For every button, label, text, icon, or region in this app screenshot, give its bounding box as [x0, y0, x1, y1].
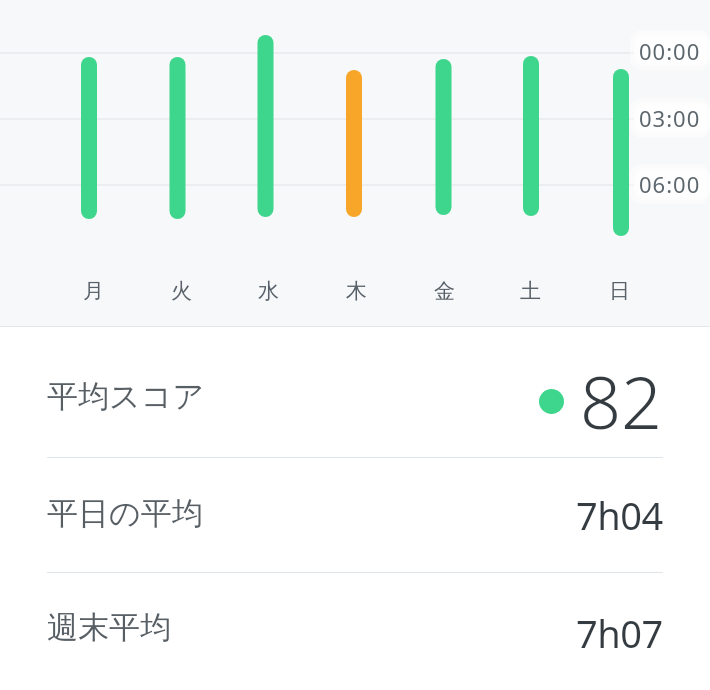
button[interactable]: 平均スコア [0, 327, 710, 457]
staticText: 金 [434, 278, 455, 304]
staticText: 00:00 [639, 36, 701, 66]
staticText: 03:00 [639, 103, 701, 133]
staticText: 平日の平均 [47, 494, 203, 533]
staticText: 月 [83, 278, 104, 304]
staticText: 82 [580, 352, 663, 450]
staticText: 平均スコア [47, 377, 205, 416]
staticText: 06:00 [639, 169, 701, 199]
staticText: 水 [258, 278, 279, 304]
staticText: 週末平均 [47, 608, 171, 647]
staticText: 日 [609, 278, 630, 304]
button[interactable]: 平日の平均 [0, 458, 710, 572]
staticText: 木 [346, 278, 367, 304]
staticText: 7h07 [576, 607, 663, 659]
staticText: 7h04 [576, 489, 663, 541]
staticText: 火 [171, 278, 192, 304]
staticText: 土 [520, 278, 541, 304]
button[interactable]: 週末平均 [0, 573, 710, 690]
